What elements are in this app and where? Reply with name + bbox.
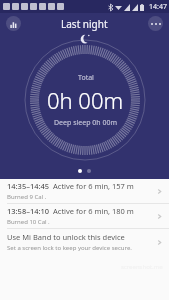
button[interactable]: Total [0,34,169,179]
staticText: 14:47 [149,2,167,12]
staticText: Active for 6 min, 180 m [53,206,134,216]
staticText: 13:58–14:10 [7,206,50,216]
staticText: Burned 10 Cal . [7,218,50,226]
staticText: Deep sleep 0h 00m [54,118,118,128]
staticText: Burned 9 Cal . [7,193,47,201]
staticText: Total [78,73,94,83]
button[interactable]: Use Mi Band to unlock this device [0,229,169,255]
staticText: Use Mi Band to unlock this device [7,232,125,242]
staticText: Active for 6 min, 157 m [53,181,134,191]
button[interactable]: Statistics [6,16,21,31]
staticText: Set a screen lock to keep your device se… [7,244,132,252]
staticText: 0h 00m [47,85,124,115]
button[interactable]: 14:35–14:45 [0,179,169,203]
button[interactable]: 13:58–14:10 [0,204,169,228]
button[interactable]: More options [148,16,163,31]
staticText: Last night [61,17,108,31]
staticText: 14:35–14:45 [7,181,50,191]
